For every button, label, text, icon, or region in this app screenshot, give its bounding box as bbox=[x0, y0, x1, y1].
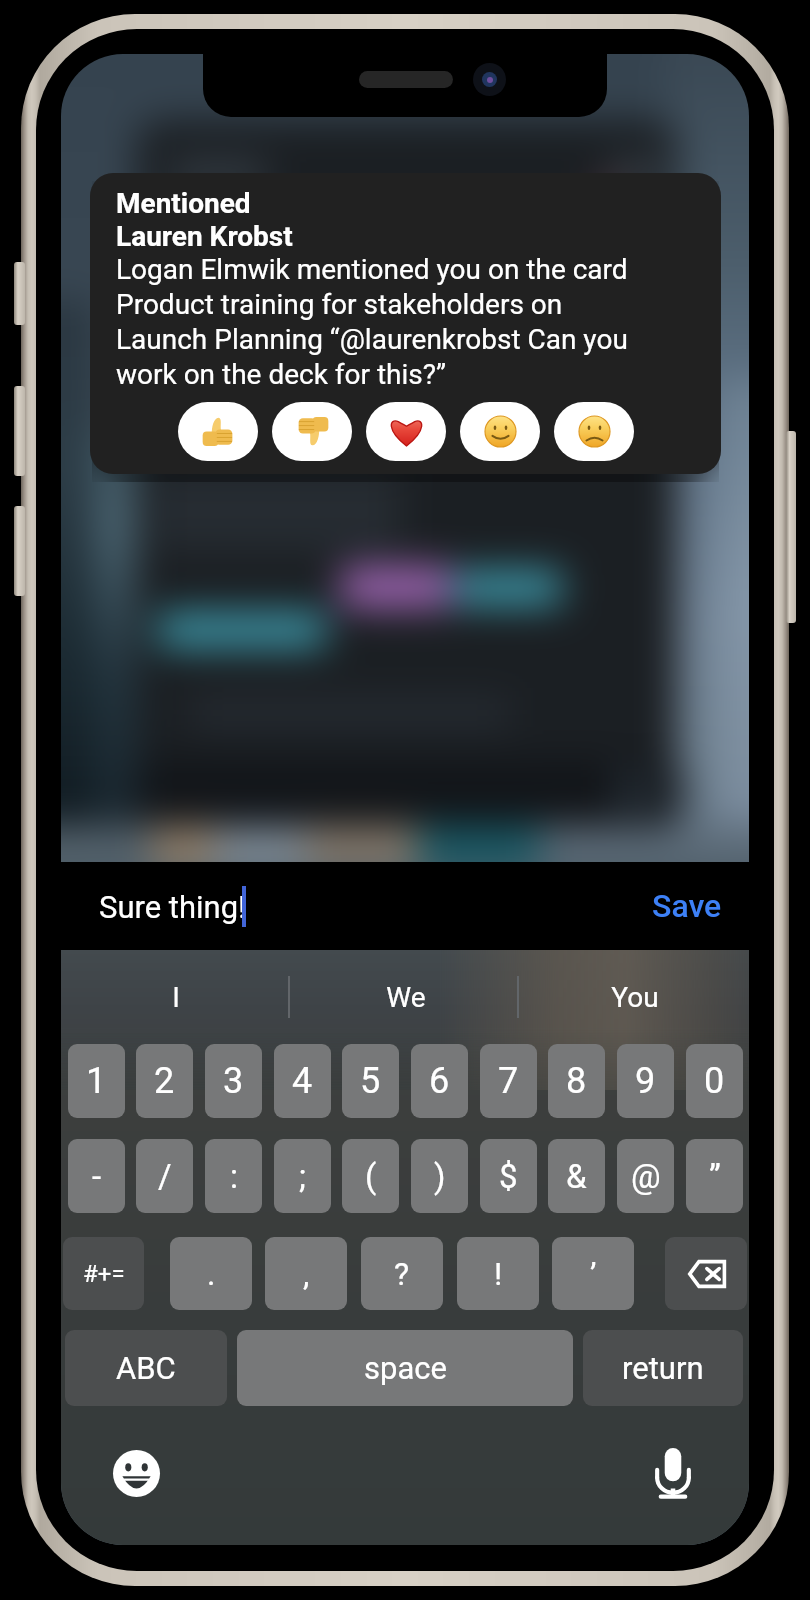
staticText: Logan Elmwik mentioned you on the card P… bbox=[116, 253, 628, 391]
button[interactable]: ’ bbox=[552, 1237, 634, 1310]
button[interactable]: return bbox=[583, 1330, 743, 1406]
button[interactable]: 6 bbox=[411, 1044, 468, 1118]
button[interactable]: I bbox=[61, 950, 291, 1044]
button[interactable]: Dictation bbox=[645, 1445, 701, 1501]
button[interactable]: - bbox=[68, 1139, 125, 1213]
button[interactable]: Mentioned bbox=[90, 173, 721, 474]
staticText: space bbox=[364, 1350, 447, 1386]
button[interactable]: 3 bbox=[205, 1044, 262, 1118]
button[interactable]: @ bbox=[617, 1139, 674, 1213]
staticText: We bbox=[386, 981, 426, 1014]
staticText: You bbox=[611, 981, 659, 1014]
button[interactable]: Emoji keyboard bbox=[108, 1445, 164, 1501]
staticText: 8 bbox=[566, 1060, 587, 1102]
button[interactable]: We bbox=[291, 950, 521, 1044]
staticText: ) bbox=[434, 1157, 446, 1196]
staticText: @ bbox=[631, 1157, 661, 1196]
staticText: 1 bbox=[86, 1060, 107, 1102]
button[interactable]: ) bbox=[411, 1139, 468, 1213]
button[interactable]: 1 bbox=[68, 1044, 125, 1118]
button[interactable]: 9 bbox=[617, 1044, 674, 1118]
button[interactable]: Smiling face bbox=[460, 402, 540, 461]
staticText: $ bbox=[499, 1157, 518, 1196]
staticText: / bbox=[158, 1157, 172, 1196]
button[interactable]: space bbox=[237, 1330, 573, 1406]
button[interactable]: Thumbs down bbox=[272, 402, 352, 461]
staticText: & bbox=[566, 1157, 587, 1196]
staticText: ABC bbox=[116, 1350, 176, 1386]
staticText: , bbox=[303, 1255, 310, 1293]
button[interactable]: ” bbox=[686, 1139, 743, 1213]
staticText: 7 bbox=[498, 1060, 519, 1102]
staticText: Mentioned bbox=[116, 187, 251, 220]
button[interactable]: $ bbox=[480, 1139, 537, 1213]
button[interactable]: & bbox=[548, 1139, 605, 1213]
button[interactable]: / bbox=[136, 1139, 193, 1213]
button[interactable]: : bbox=[205, 1139, 262, 1213]
staticText: #+= bbox=[83, 1260, 125, 1288]
staticText: 6 bbox=[429, 1060, 450, 1102]
staticText: . bbox=[207, 1255, 216, 1293]
staticText: 2 bbox=[154, 1060, 175, 1102]
button[interactable]: ABC bbox=[65, 1330, 227, 1406]
button[interactable]: Heart bbox=[366, 402, 446, 461]
staticText: Sure thing! bbox=[99, 889, 247, 925]
staticText: return bbox=[622, 1350, 704, 1386]
button[interactable]: #+= bbox=[63, 1237, 144, 1310]
staticText: - bbox=[92, 1157, 102, 1196]
button[interactable]: . bbox=[170, 1237, 252, 1310]
button[interactable]: You bbox=[521, 950, 749, 1044]
button[interactable]: Save bbox=[652, 887, 722, 925]
button[interactable]: 2 bbox=[136, 1044, 193, 1118]
button[interactable]: ! bbox=[457, 1237, 539, 1310]
button[interactable]: 5 bbox=[342, 1044, 399, 1118]
button[interactable]: 0 bbox=[686, 1044, 743, 1118]
button[interactable]: ; bbox=[274, 1139, 331, 1213]
staticText: ? bbox=[394, 1255, 410, 1293]
button[interactable]: ? bbox=[361, 1237, 443, 1310]
button[interactable]: Backspace bbox=[665, 1237, 747, 1310]
staticText: Save bbox=[652, 887, 722, 925]
staticText: : bbox=[230, 1157, 238, 1196]
staticText: ; bbox=[299, 1157, 306, 1196]
staticText: 5 bbox=[360, 1060, 381, 1102]
staticText: ( bbox=[365, 1157, 377, 1196]
button[interactable]: , bbox=[265, 1237, 347, 1310]
staticText: ’ bbox=[590, 1255, 597, 1293]
staticText: 9 bbox=[635, 1060, 656, 1102]
button[interactable]: 8 bbox=[548, 1044, 605, 1118]
staticText: 3 bbox=[223, 1060, 244, 1102]
button[interactable]: ( bbox=[342, 1139, 399, 1213]
staticText: ! bbox=[494, 1255, 503, 1293]
staticText: I bbox=[172, 981, 180, 1014]
staticText: 0 bbox=[704, 1060, 725, 1102]
staticText: 4 bbox=[292, 1060, 313, 1102]
staticText: Lauren Krobst bbox=[116, 220, 293, 253]
staticText: ” bbox=[709, 1157, 721, 1196]
button[interactable]: 7 bbox=[480, 1044, 537, 1118]
button[interactable]: 4 bbox=[274, 1044, 331, 1118]
button[interactable]: Frowning face bbox=[554, 402, 634, 461]
button[interactable]: Thumbs up bbox=[178, 402, 258, 461]
